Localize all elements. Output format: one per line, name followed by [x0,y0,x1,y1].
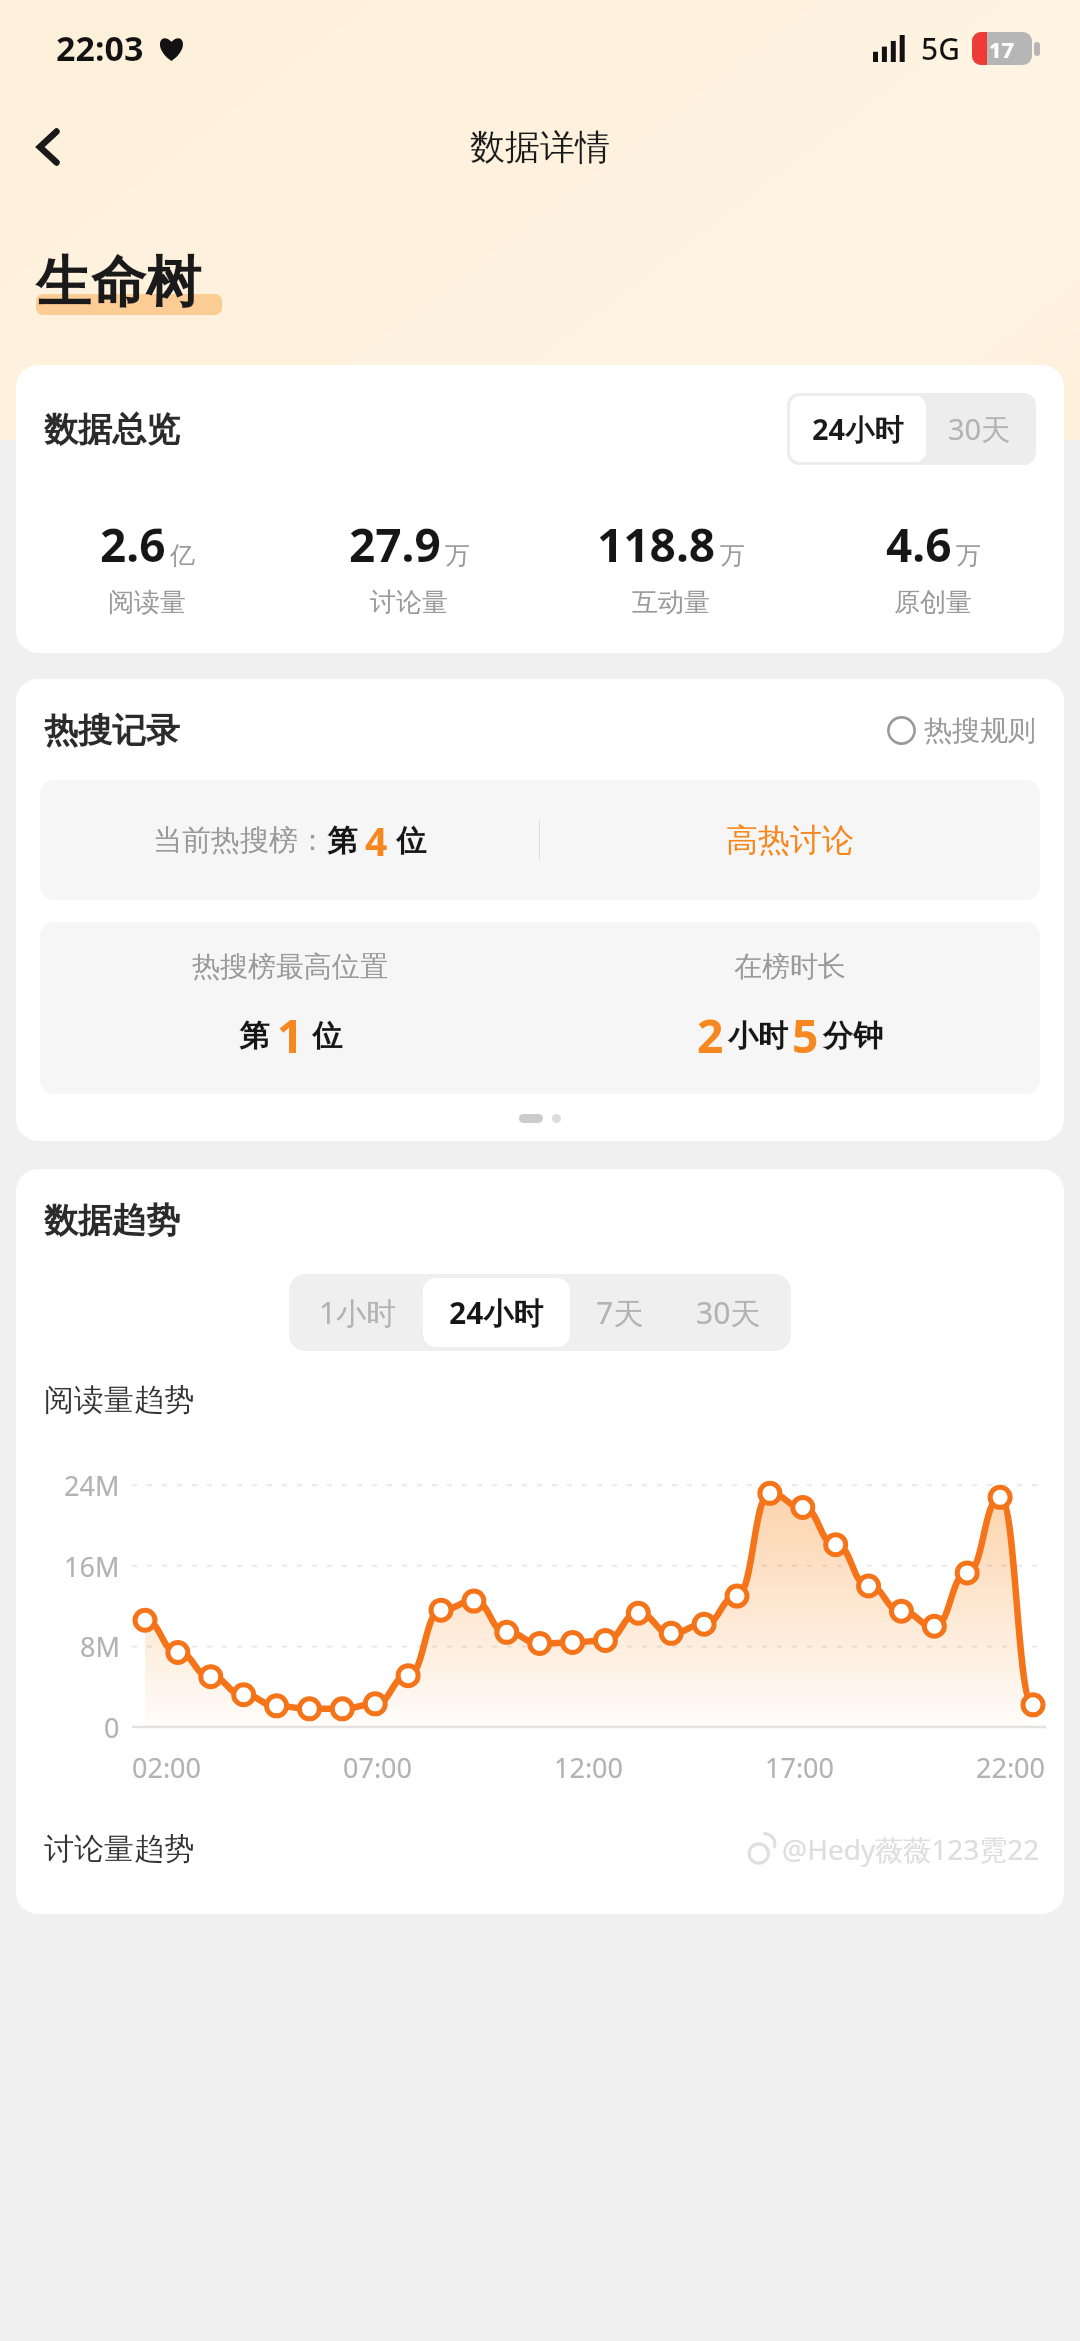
button[interactable]: 7天 [570,1278,670,1347]
staticText: 5G [921,28,960,69]
staticText: 22:00 [976,1749,1046,1786]
button[interactable]: 24小时 [790,396,926,462]
staticText: 万 [720,540,745,571]
staticText: 位 [396,822,426,860]
button[interactable]: Back [12,109,88,185]
staticText: 分钟 [823,1017,883,1055]
staticText: 2 [697,1004,724,1067]
staticText: 万 [956,540,981,571]
staticText: 互动量 [632,586,710,619]
staticText: 万 [445,540,470,571]
staticText: 原创量 [894,586,972,619]
staticText: 27.9 [349,513,441,576]
staticText: 24小时 [812,409,904,449]
staticText: 07:00 [343,1749,413,1786]
button[interactable]: 30天 [926,396,1033,462]
staticText: 24M [64,1467,120,1504]
staticText: 热搜规则 [924,713,1036,748]
staticText: 30天 [948,409,1011,449]
staticText: 亿 [170,540,195,571]
staticText: @Hedy薇薇123霓22 [782,1830,1040,1868]
button[interactable]: 30天 [670,1278,787,1347]
staticText: 118.8 [597,513,716,576]
staticText: 8M [80,1628,120,1665]
staticText: 1 [277,1004,304,1067]
staticText: 热搜记录 [44,709,180,752]
staticText: 讨论量趋势 [44,1830,194,1868]
staticText: 小时 [728,1017,788,1055]
button[interactable]: 1小时 [293,1278,423,1347]
staticText: 当前热搜榜： [153,822,327,859]
staticText: 7天 [596,1292,644,1333]
staticText: 生命树 [36,248,201,317]
button[interactable]: 24小时 [423,1278,570,1347]
staticText: 12:00 [554,1749,624,1786]
staticText: 4.6 [886,513,952,576]
staticText: 第 [327,822,357,860]
staticText: 数据趋势 [44,1199,180,1242]
staticText: 第 [239,1017,269,1055]
staticText: 5 [792,1004,819,1067]
staticText: 数据详情 [470,125,610,169]
staticText: 4 [365,814,388,867]
staticText: 17 [989,34,1015,64]
staticText: 位 [312,1017,342,1055]
staticText: 热搜榜最高位置 [192,949,388,984]
staticText: 阅读量 [108,586,186,619]
staticText: 02:00 [132,1749,202,1786]
staticText: 17:00 [765,1749,835,1786]
staticText: 1小时 [319,1292,397,1333]
staticText: 阅读量趋势 [44,1381,194,1419]
staticText: 24小时 [449,1292,544,1333]
staticText: 高热讨论 [726,820,854,860]
staticText: 22:03 [56,25,144,71]
staticText: 讨论量 [370,586,448,619]
staticText: 30天 [696,1292,761,1333]
staticText: 0 [104,1709,120,1746]
staticText: 16M [64,1548,120,1585]
button[interactable]: 热搜规则 [887,713,1036,748]
staticText: 2.6 [100,513,166,576]
staticText: 数据总览 [44,408,180,451]
staticText: 在榜时长 [734,949,846,984]
